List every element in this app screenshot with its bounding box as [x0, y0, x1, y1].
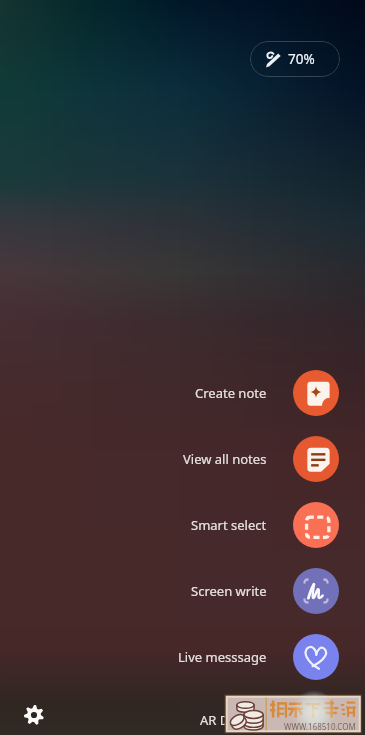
button[interactable]: Create note — [195, 370, 339, 416]
button[interactable]: Screen write — [191, 568, 339, 614]
staticText: Screen write — [191, 582, 267, 600]
button[interactable]: Live messsage — [178, 634, 339, 680]
staticText: Live messsage — [178, 648, 267, 666]
button[interactable]: View all notes — [183, 436, 339, 482]
staticText: Create note — [195, 384, 267, 402]
staticText: View all notes — [183, 450, 267, 468]
staticText: 70% — [288, 50, 315, 68]
button[interactable]: Settings — [18, 699, 49, 730]
staticText: Smart select — [191, 516, 267, 534]
button[interactable]: AR Doodle — [200, 711, 264, 729]
button[interactable]: 70% — [250, 41, 340, 77]
button[interactable]: Smart select — [191, 502, 339, 548]
staticText: WWW.168510.COM — [284, 721, 356, 732]
